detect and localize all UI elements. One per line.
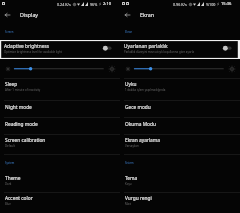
- staticText: Theme: [5, 175, 21, 182]
- staticText: Gece modu: [125, 104, 151, 111]
- staticText: Tema: [125, 175, 138, 182]
- staticText: System: [5, 161, 15, 165]
- staticText: Ekran: [140, 11, 155, 18]
- button[interactable]: Uyarlanan parlaklık: [120, 40, 240, 59]
- staticText: Koyu: [125, 182, 132, 186]
- button[interactable]: Ekran ayarlama: [120, 134, 240, 155]
- button[interactable]: Night mode: [0, 100, 120, 117]
- staticText: 15:36: [221, 1, 232, 7]
- staticText: 0.96 K/s: [173, 2, 187, 7]
- button[interactable]: Brightness: [0, 62, 120, 75]
- staticText: Parlaklık düzeyini mevcut ışık koşulları…: [124, 50, 194, 54]
- staticText: 0.24 K/s: [57, 2, 71, 7]
- button[interactable]: Screen calibration: [0, 134, 120, 155]
- button[interactable]: Okuma Modu: [120, 117, 240, 134]
- staticText: Blue: [5, 202, 11, 206]
- staticText: Sistem: [125, 161, 134, 165]
- staticText: Sleep: [5, 81, 18, 88]
- staticText: After 1 minute of inactivity: [5, 88, 41, 92]
- button[interactable]: Brightness: [120, 62, 240, 75]
- staticText: Accent color: [5, 195, 33, 202]
- button[interactable]: Uyku: [120, 78, 240, 100]
- staticText: Night mode: [5, 104, 32, 111]
- button[interactable]: Adaptive brightness: [0, 40, 120, 59]
- button[interactable]: Vurgu rengi: [120, 192, 240, 213]
- staticText: Optimize brightness level for available …: [4, 50, 62, 54]
- button[interactable]: Back: [0, 8, 15, 23]
- staticText: Varsayılan: [125, 144, 139, 148]
- button[interactable]: Theme: [0, 172, 120, 192]
- staticText: Display: [20, 11, 39, 18]
- staticText: Vurgu rengi: [125, 195, 152, 202]
- staticText: %100: [206, 2, 216, 7]
- staticText: 1 dakika işlem yapılmadığında: [125, 88, 166, 92]
- button[interactable]: Accent color: [0, 192, 120, 213]
- staticText: Okuma Modu: [125, 121, 156, 128]
- staticText: Screen: [5, 30, 14, 34]
- staticText: 96%: [90, 2, 98, 7]
- staticText: Reading mode: [5, 121, 38, 128]
- button[interactable]: Tema: [120, 172, 240, 192]
- staticText: Dark: [5, 182, 12, 186]
- button[interactable]: Gece modu: [120, 100, 240, 117]
- staticText: 2:10: [103, 1, 112, 7]
- staticText: Mavi: [125, 202, 132, 206]
- staticText: Screen calibration: [5, 137, 46, 144]
- staticText: Ekran ayarlama: [125, 137, 160, 144]
- button[interactable]: Back: [120, 8, 135, 23]
- button[interactable]: Reading mode: [0, 117, 120, 134]
- staticText: Adaptive brightness: [4, 43, 50, 50]
- staticText: Default: [5, 144, 15, 148]
- staticText: Uyku: [125, 81, 137, 88]
- button[interactable]: Sleep: [0, 78, 120, 100]
- staticText: Uyarlanan parlaklık: [124, 43, 168, 50]
- staticText: Ekran: [125, 30, 133, 34]
